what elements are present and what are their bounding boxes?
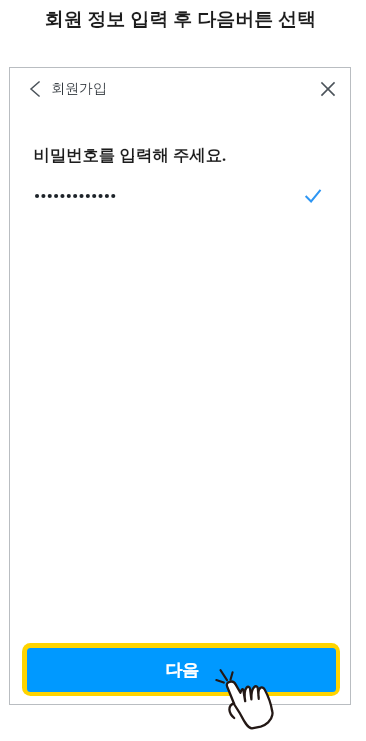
button[interactable]: Password field [33, 177, 327, 215]
button[interactable]: 다음 [22, 643, 340, 696]
staticText: 비밀번호를 입력해 주세요. [33, 143, 227, 165]
staticText: 회원가입 [51, 80, 107, 98]
button[interactable]: Back [16, 67, 53, 110]
staticText: 회원 정보 입력 후 다음버튼 선택 [44, 6, 316, 32]
button[interactable]: Close [307, 67, 348, 110]
staticText: 다음 [165, 660, 199, 681]
